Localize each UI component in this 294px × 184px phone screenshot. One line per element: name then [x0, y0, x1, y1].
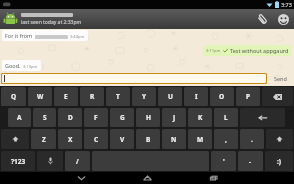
- button[interactable]: C: [84, 129, 108, 149]
- button[interactable]: Emoticon: [265, 151, 293, 171]
- button[interactable]: T: [106, 87, 130, 106]
- staticText: I: [195, 92, 198, 101]
- staticText: R: [90, 92, 95, 101]
- button[interactable]: Good.: [2, 60, 41, 71]
- staticText: ?123: [11, 157, 26, 166]
- button[interactable]: G: [110, 108, 134, 127]
- button[interactable]: last seen today at 2:33pm: [0, 9, 294, 29]
- button[interactable]: Backspace: [262, 87, 293, 106]
- staticText: K: [198, 113, 203, 122]
- staticText: A: [17, 113, 22, 122]
- staticText: Y: [142, 92, 147, 101]
- staticText: C: [94, 135, 99, 144]
- button[interactable]: Send: [267, 72, 293, 85]
- button[interactable]: Recent apps: [203, 172, 223, 184]
- button[interactable]: Attach: [254, 11, 270, 27]
- staticText: V: [120, 135, 125, 144]
- button[interactable]: W: [28, 87, 52, 106]
- button[interactable]: Y: [132, 87, 156, 106]
- staticText: H: [146, 113, 151, 122]
- staticText: Q: [11, 92, 17, 101]
- button[interactable]: Home: [137, 172, 157, 184]
- staticText: D: [68, 113, 73, 122]
- staticText: 3:73: [281, 1, 292, 8]
- staticText: :): [277, 157, 282, 166]
- button[interactable]: J: [162, 108, 186, 127]
- button[interactable]: Shift: [266, 129, 293, 149]
- staticText: G: [120, 113, 125, 122]
- button[interactable]: O: [210, 87, 234, 106]
- staticText: U: [168, 92, 173, 101]
- button[interactable]: U: [158, 87, 182, 106]
- staticText: ,: [225, 135, 227, 144]
- button[interactable]: P: [236, 87, 260, 106]
- button[interactable]: B: [136, 129, 160, 149]
- button[interactable]: For it from: [2, 30, 88, 41]
- button[interactable]: Enter: [240, 108, 285, 127]
- staticText: E: [64, 92, 68, 101]
- button[interactable]: Z: [31, 129, 56, 149]
- button[interactable]: S: [33, 108, 56, 127]
- staticText: N: [171, 135, 177, 144]
- button[interactable]: M: [188, 129, 212, 149]
- staticText: W: [37, 92, 44, 101]
- button[interactable]: H: [136, 108, 160, 127]
- button[interactable]: X: [58, 129, 82, 149]
- button[interactable]: L: [214, 108, 238, 127]
- staticText: M: [197, 135, 204, 144]
- staticText: S: [43, 113, 47, 122]
- button[interactable]: Symbols: [1, 151, 35, 171]
- button[interactable]: D: [58, 108, 82, 127]
- staticText: 3:13pm: [23, 64, 38, 69]
- button[interactable]: ,: [214, 129, 238, 149]
- staticText: ': [223, 157, 225, 166]
- button[interactable]: Voice input: [37, 151, 63, 171]
- button[interactable]: K: [188, 108, 212, 127]
- staticText: Send: [274, 75, 287, 82]
- button[interactable]: E: [54, 87, 78, 106]
- staticText: F: [94, 113, 98, 122]
- staticText: 2:44pm: [70, 34, 85, 39]
- button[interactable]: Hide keyboard: [71, 172, 91, 184]
- button[interactable]: Shift: [1, 129, 29, 149]
- button[interactable]: [2, 74, 266, 83]
- staticText: Good.: [5, 62, 21, 69]
- button[interactable]: N: [162, 129, 186, 149]
- staticText: P: [246, 92, 251, 101]
- staticText: /: [76, 157, 79, 166]
- staticText: .: [251, 135, 253, 144]
- button[interactable]: V: [110, 129, 134, 149]
- staticText: T: [116, 92, 120, 101]
- button[interactable]: .: [240, 129, 264, 149]
- staticText: O: [219, 92, 225, 101]
- staticText: -: [249, 157, 252, 166]
- button[interactable]: R: [80, 87, 104, 106]
- staticText: X: [68, 135, 73, 144]
- button[interactable]: I: [184, 87, 208, 106]
- staticText: B: [146, 135, 151, 144]
- staticText: J: [173, 113, 176, 122]
- button[interactable]: Apostrophe: [211, 151, 236, 171]
- staticText: For it from: [5, 32, 33, 39]
- button[interactable]: Q: [1, 87, 26, 106]
- button[interactable]: F: [84, 108, 108, 127]
- staticText: Test without appgaurd: [230, 47, 289, 54]
- button[interactable]: Slash: [65, 151, 90, 171]
- button[interactable]: Emoji: [275, 11, 291, 27]
- staticText: L: [224, 113, 228, 122]
- button[interactable]: Hyphen: [238, 151, 263, 171]
- staticText: last seen today at 2:33pm: [21, 19, 82, 26]
- staticText: Z: [42, 135, 46, 144]
- button[interactable]: A: [8, 108, 31, 127]
- button[interactable]: 3:11pm: [203, 45, 292, 56]
- staticText: 3:11pm: [206, 48, 221, 53]
